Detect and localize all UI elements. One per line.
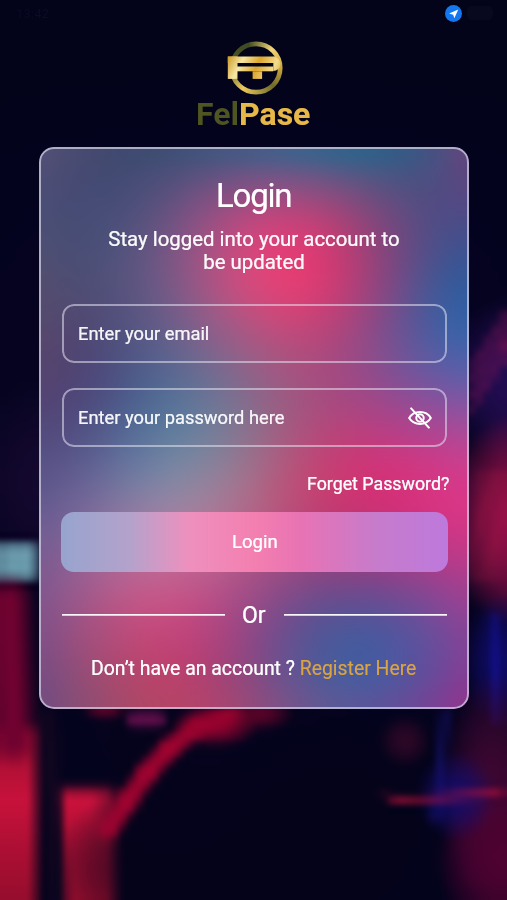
staticText: Login: [216, 176, 292, 215]
staticText: Stay logged into your account to be upda…: [104, 227, 404, 274]
staticText: Login: [232, 531, 278, 553]
staticText: Enter your email: [78, 323, 210, 344]
button[interactable]: Show password: [403, 401, 437, 435]
button[interactable]: Enter your email: [62, 304, 447, 363]
button[interactable]: Login: [61, 512, 448, 572]
staticText: FelPase: [196, 95, 311, 133]
staticText: Enter your password here: [78, 407, 285, 428]
staticText: Or: [242, 602, 266, 629]
button[interactable]: Don’t have an account ? Register Here: [91, 657, 417, 680]
other: FelPase logo: [226, 38, 286, 98]
button[interactable]: Forget Password?: [307, 473, 450, 494]
button[interactable]: Enter your password here: [62, 388, 447, 447]
staticText: 13:42: [16, 6, 50, 21]
